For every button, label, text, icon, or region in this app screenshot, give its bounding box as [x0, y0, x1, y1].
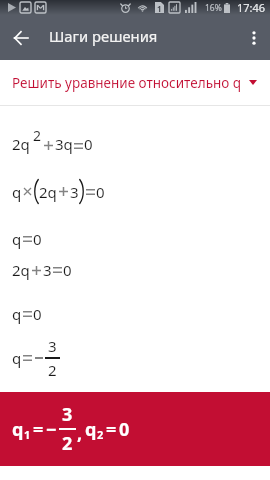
staticText: 1: [157, 3, 162, 14]
staticText: ,: [77, 421, 83, 446]
button[interactable]: Решить уравнение относительно q: [0, 60, 270, 105]
staticText: 3q: [55, 134, 73, 154]
staticText: Шаги решения: [49, 26, 158, 46]
staticText: 2: [48, 360, 57, 380]
staticText: 0: [33, 229, 42, 249]
staticText: 3: [43, 260, 52, 280]
staticText: 2: [33, 126, 42, 145]
staticText: q: [12, 417, 24, 442]
staticText: 0: [119, 417, 130, 442]
staticText: 3: [48, 336, 57, 356]
staticText: q: [12, 229, 22, 249]
staticText: 0: [96, 182, 105, 202]
staticText: 2q: [39, 182, 57, 202]
staticText: 0: [63, 260, 72, 280]
staticText: q: [12, 182, 22, 202]
staticText: 3: [62, 402, 73, 427]
staticText: 2q: [12, 134, 30, 154]
staticText: Решить уравнение относительно q: [12, 74, 242, 92]
staticText: q: [12, 304, 22, 324]
staticText: =: [106, 417, 117, 442]
button[interactable]: Back: [0, 15, 42, 60]
staticText: 3: [70, 182, 79, 202]
staticText: 2q: [12, 260, 30, 280]
staticText: 2: [62, 431, 73, 456]
staticText: 16%: [205, 2, 222, 14]
staticText: q: [12, 348, 22, 368]
staticText: q: [85, 417, 97, 442]
staticText: −: [46, 417, 57, 442]
staticText: 0: [84, 134, 93, 154]
staticText: 1: [24, 427, 31, 442]
staticText: 2: [97, 427, 104, 442]
staticText: 0: [33, 304, 42, 324]
button[interactable]: More options: [237, 15, 270, 60]
staticText: =: [33, 417, 44, 442]
staticText: 17:46: [237, 0, 266, 15]
